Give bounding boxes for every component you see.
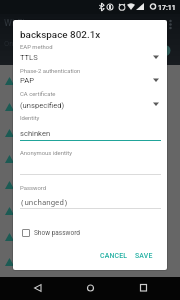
staticText: backspace 802.1x xyxy=(20,29,101,41)
staticText: CA certificate xyxy=(20,91,56,98)
staticText: Phase-2 authentication xyxy=(20,68,81,75)
staticText: Password xyxy=(20,185,47,192)
staticText: TTLS xyxy=(20,53,38,62)
button[interactable]: SAVE xyxy=(131,250,149,266)
button[interactable] xyxy=(13,42,167,66)
staticText: CANCEL xyxy=(100,252,128,260)
staticText: schinken xyxy=(20,129,51,138)
staticText: (unchanged) xyxy=(20,197,69,207)
button[interactable]: CANCEL xyxy=(96,250,124,266)
staticText: Show password xyxy=(34,229,80,237)
staticText: (unspecified) xyxy=(20,101,65,110)
button[interactable]: Back xyxy=(29,280,45,296)
other: Bluetooth xyxy=(99,3,104,11)
staticText: PAP xyxy=(20,76,35,85)
staticText: Identity xyxy=(20,115,40,122)
staticText: SAVE xyxy=(135,252,153,260)
staticText: 17:11 xyxy=(158,4,176,12)
button[interactable] xyxy=(13,181,167,211)
button[interactable]: Recent apps xyxy=(135,280,151,296)
staticText: EAP method xyxy=(20,44,53,51)
button[interactable] xyxy=(13,146,167,176)
button[interactable] xyxy=(13,89,167,113)
button[interactable] xyxy=(13,113,167,143)
button[interactable] xyxy=(13,66,167,90)
staticText: Anonymous identity xyxy=(20,150,72,157)
staticText: Wi-Fi xyxy=(4,18,25,29)
button[interactable]: Show password xyxy=(22,225,80,241)
button[interactable]: Home xyxy=(82,280,98,296)
staticText: On xyxy=(4,39,14,48)
